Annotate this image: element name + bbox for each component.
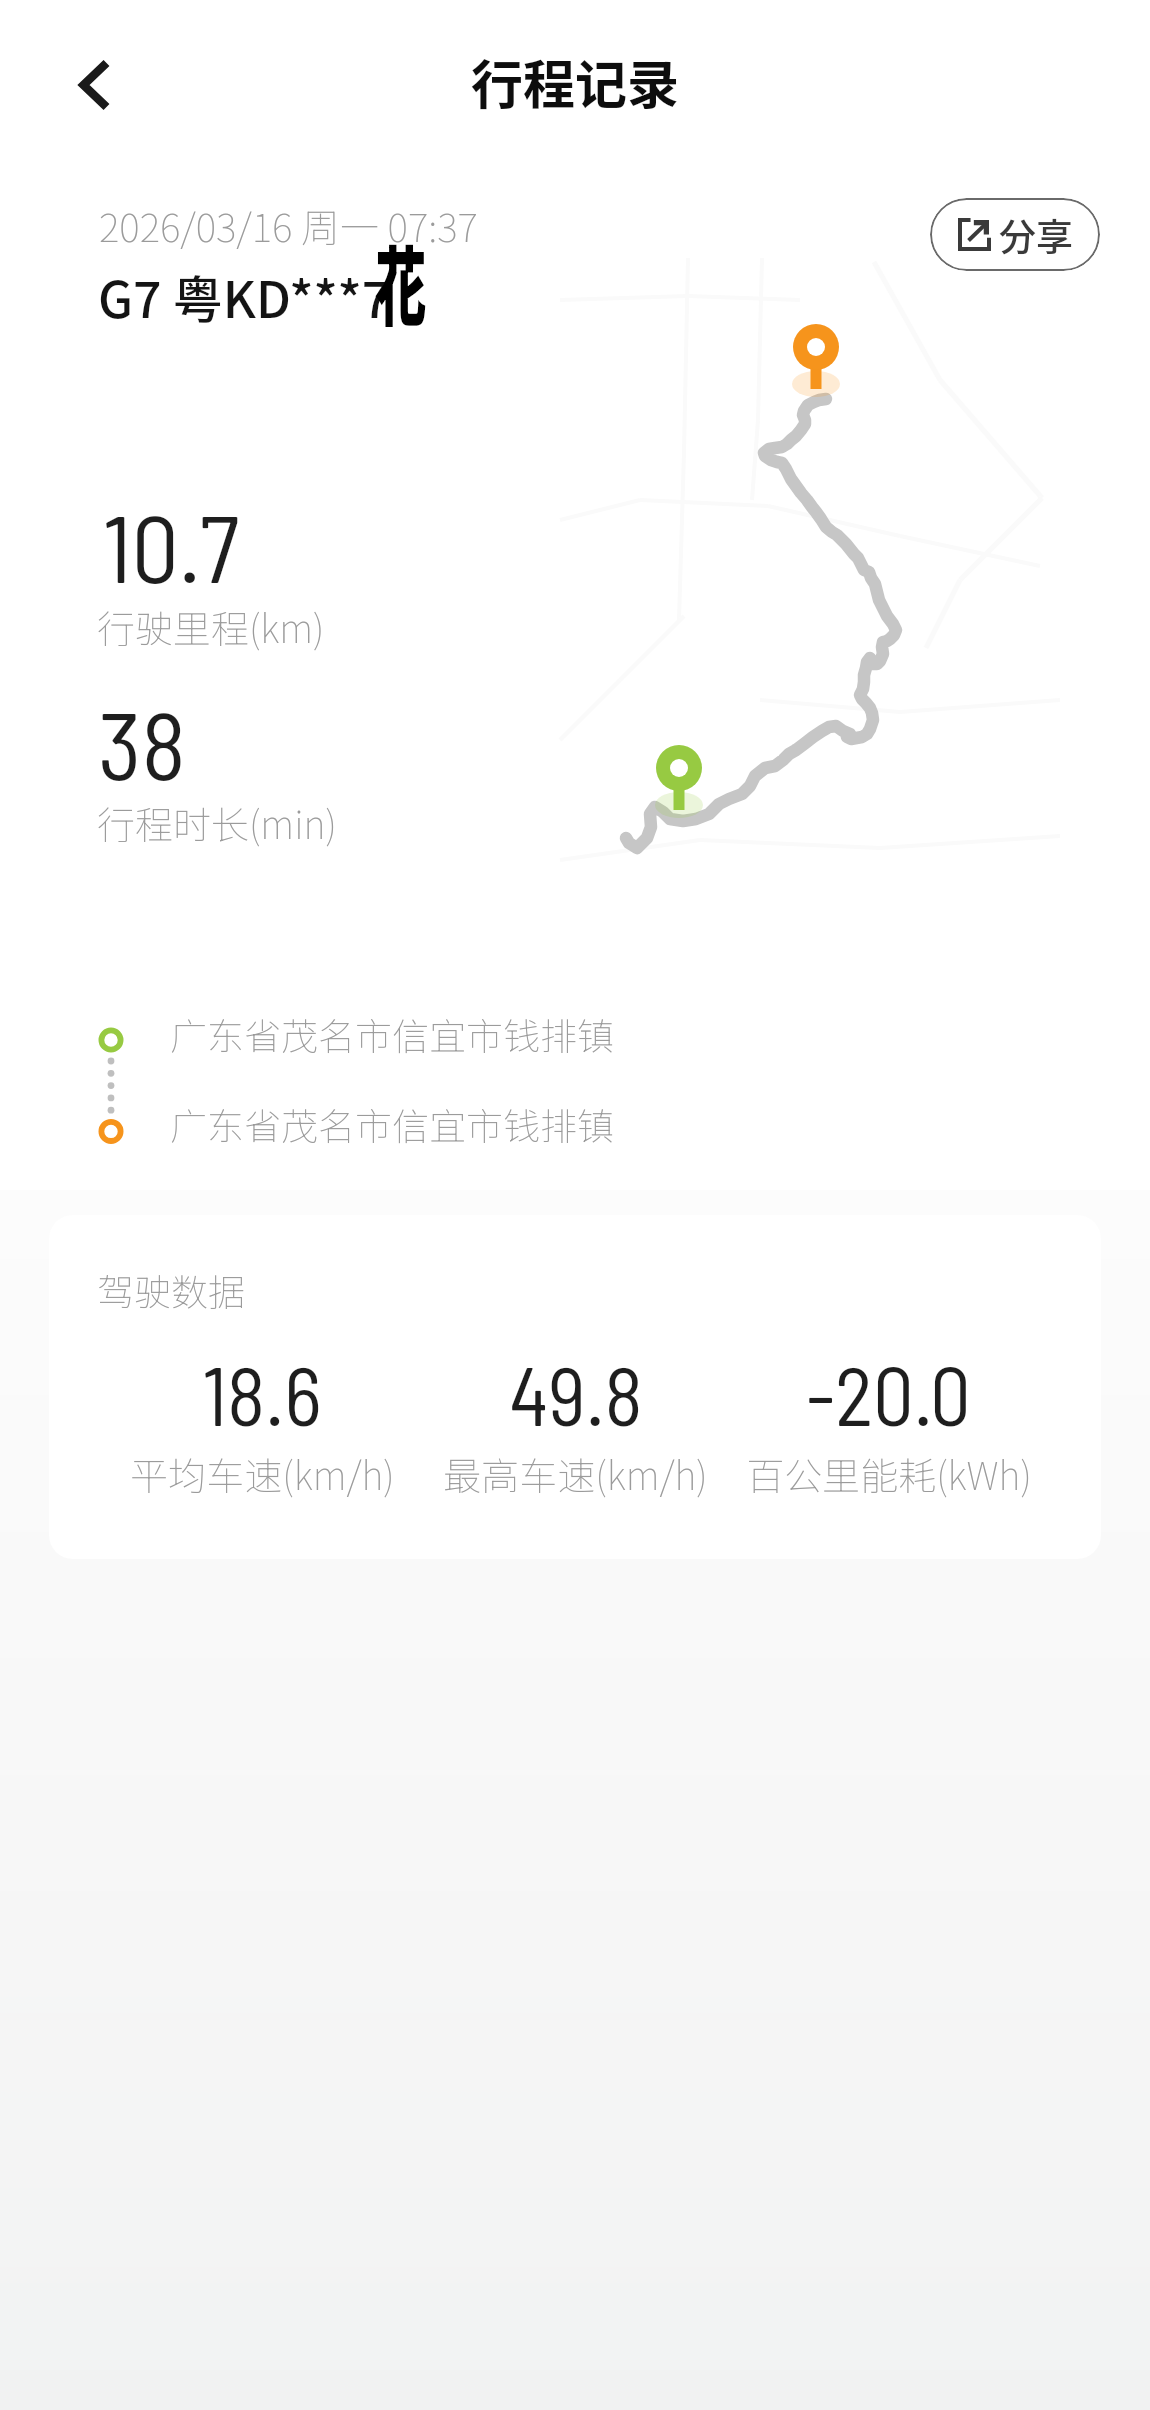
staticText: 行程记录 [471, 44, 680, 119]
staticText: 广东省茂名市信宜市钱排镇 [170, 1097, 614, 1151]
staticText: 驾驶数据 [97, 1263, 245, 1317]
staticText: 广东省茂名市信宜市钱排镇 [170, 1007, 614, 1061]
staticText: 分享 [999, 208, 1073, 262]
staticText: 10.7 [103, 489, 240, 602]
staticText: 行驶里程(km) [97, 599, 325, 654]
staticText: 49.8 [509, 1345, 643, 1442]
staticText: 百公里能耗(kWh) [746, 1446, 1032, 1501]
staticText: 平均车速(km/h) [130, 1446, 395, 1501]
button[interactable]: 分享 [930, 198, 1100, 271]
staticText: 行程时长(min) [97, 795, 337, 850]
staticText: 最高车速(km/h) [443, 1446, 708, 1501]
staticText: G7 粤KD***7 [98, 260, 391, 332]
staticText: 18.6 [202, 1345, 322, 1442]
staticText: -20.0 [806, 1345, 971, 1442]
button[interactable]: Back [40, 30, 150, 140]
staticText: 2026/03/16 周一 07:37 [99, 197, 478, 253]
staticText: 花 [376, 220, 426, 342]
staticText: 38 [98, 686, 186, 799]
